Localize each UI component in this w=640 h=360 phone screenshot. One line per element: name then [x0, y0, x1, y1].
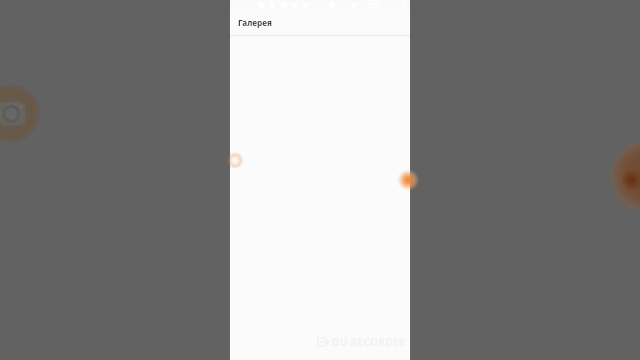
- staticText: Галерея: [238, 17, 272, 28]
- other: DU Recorder: [318, 338, 329, 346]
- button[interactable]: Галерея: [230, 10, 410, 35]
- other: Status bar: [230, 0, 410, 360]
- staticText: DU RECORDER: [332, 335, 406, 349]
